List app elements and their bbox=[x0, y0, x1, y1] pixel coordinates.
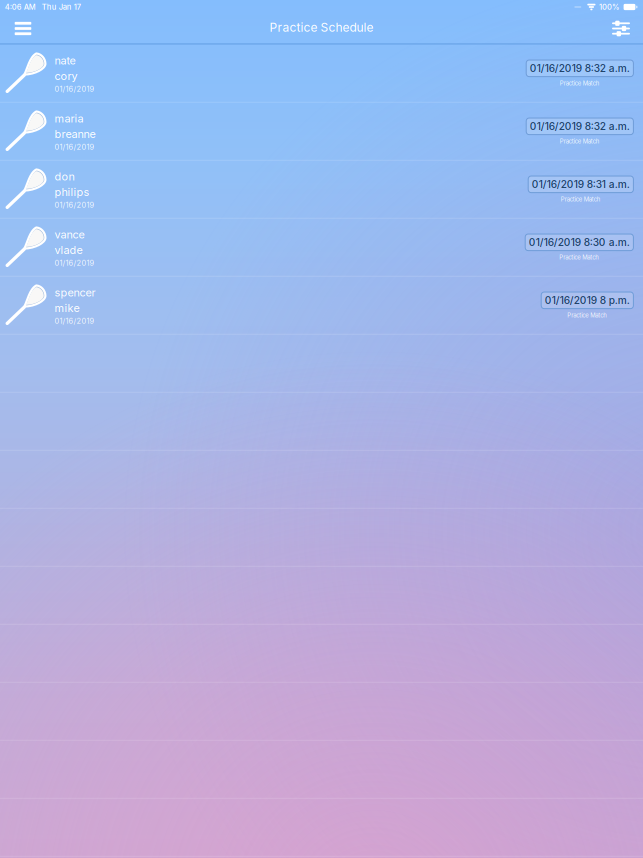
staticText: cory bbox=[54, 69, 77, 82]
staticText: vance bbox=[54, 228, 84, 241]
staticText: 01/16/2019 8 p.m. bbox=[545, 294, 630, 306]
staticText: don bbox=[54, 170, 74, 183]
button[interactable]: Filter options bbox=[603, 14, 639, 43]
staticText: Practice Match bbox=[561, 196, 601, 203]
staticText: nate bbox=[54, 54, 75, 67]
staticText: 100% bbox=[599, 2, 620, 12]
staticText: 01/16/2019 bbox=[54, 317, 94, 326]
button[interactable]: nate bbox=[0, 45, 643, 103]
staticText: 01/16/2019 8:32 a.m. bbox=[530, 62, 630, 74]
staticText: 01/16/2019 bbox=[54, 259, 94, 268]
staticText: 01/16/2019 8:32 a.m. bbox=[530, 120, 630, 132]
staticText: Thu Jan 17 bbox=[42, 2, 81, 12]
staticText: 01/16/2019 8:31 a.m. bbox=[532, 178, 630, 190]
staticText: philips bbox=[54, 185, 89, 198]
staticText: mike bbox=[54, 301, 79, 314]
staticText: Practice Schedule bbox=[269, 20, 373, 35]
staticText: 01/16/2019 8:30 a.m. bbox=[529, 236, 630, 248]
button[interactable]: spencer bbox=[0, 277, 643, 335]
staticText: Practice Match bbox=[560, 138, 600, 145]
staticText: 01/16/2019 bbox=[54, 201, 94, 210]
staticText: 4:06 AM bbox=[5, 2, 36, 12]
staticText: 01/16/2019 bbox=[54, 85, 94, 94]
button[interactable]: don bbox=[0, 161, 643, 219]
button[interactable]: maria bbox=[0, 103, 643, 161]
staticText: maria bbox=[54, 112, 83, 125]
staticText: vlade bbox=[54, 243, 82, 256]
button[interactable]: Menu bbox=[5, 14, 41, 43]
button[interactable]: vance bbox=[0, 219, 643, 277]
staticText: breanne bbox=[54, 127, 95, 140]
staticText: Practice Match bbox=[567, 312, 607, 319]
staticText: Practice Match bbox=[560, 80, 600, 87]
staticText: Practice Match bbox=[559, 254, 599, 261]
staticText: spencer bbox=[54, 286, 95, 299]
staticText: 01/16/2019 bbox=[54, 143, 94, 152]
